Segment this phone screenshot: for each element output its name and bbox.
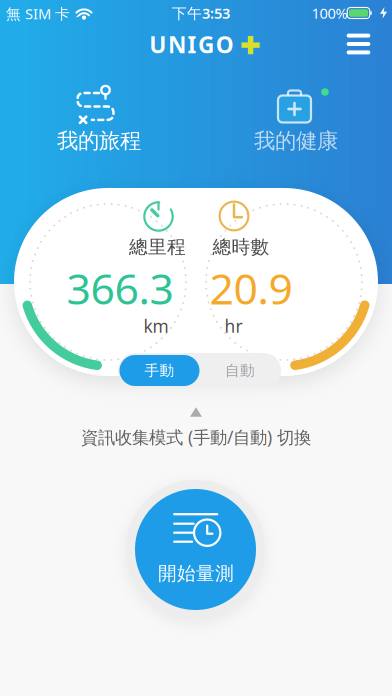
staticText: 20.9 — [209, 260, 292, 316]
staticText: hr — [224, 314, 242, 337]
staticText: 開始量測 — [158, 562, 234, 585]
button[interactable]: 我的旅程 — [24, 67, 174, 161]
staticText: 我的健康 — [254, 128, 338, 154]
button[interactable]: 我的健康 — [221, 67, 371, 161]
staticText: 100% — [311, 3, 347, 23]
staticText: UNIGO — [149, 29, 234, 59]
staticText: km — [143, 314, 168, 337]
button[interactable]: 手動 — [119, 355, 199, 386]
staticText: 我的旅程 — [57, 128, 141, 154]
staticText: 無 SIM 卡 — [6, 4, 70, 23]
staticText: 下午3:53 — [172, 3, 230, 23]
staticText: 366.3 — [66, 260, 173, 316]
button[interactable]: Menu — [339, 26, 378, 62]
staticText: 總里程 — [129, 235, 186, 258]
button[interactable]: 開始量測 — [135, 489, 256, 610]
staticText: 總時數 — [212, 235, 269, 258]
button[interactable]: 自動 — [202, 355, 278, 386]
staticText: 資訊收集模式 (手動/自動) 切換 — [81, 425, 311, 448]
staticText: 手動 — [144, 361, 174, 379]
staticText: 自動 — [225, 361, 255, 379]
